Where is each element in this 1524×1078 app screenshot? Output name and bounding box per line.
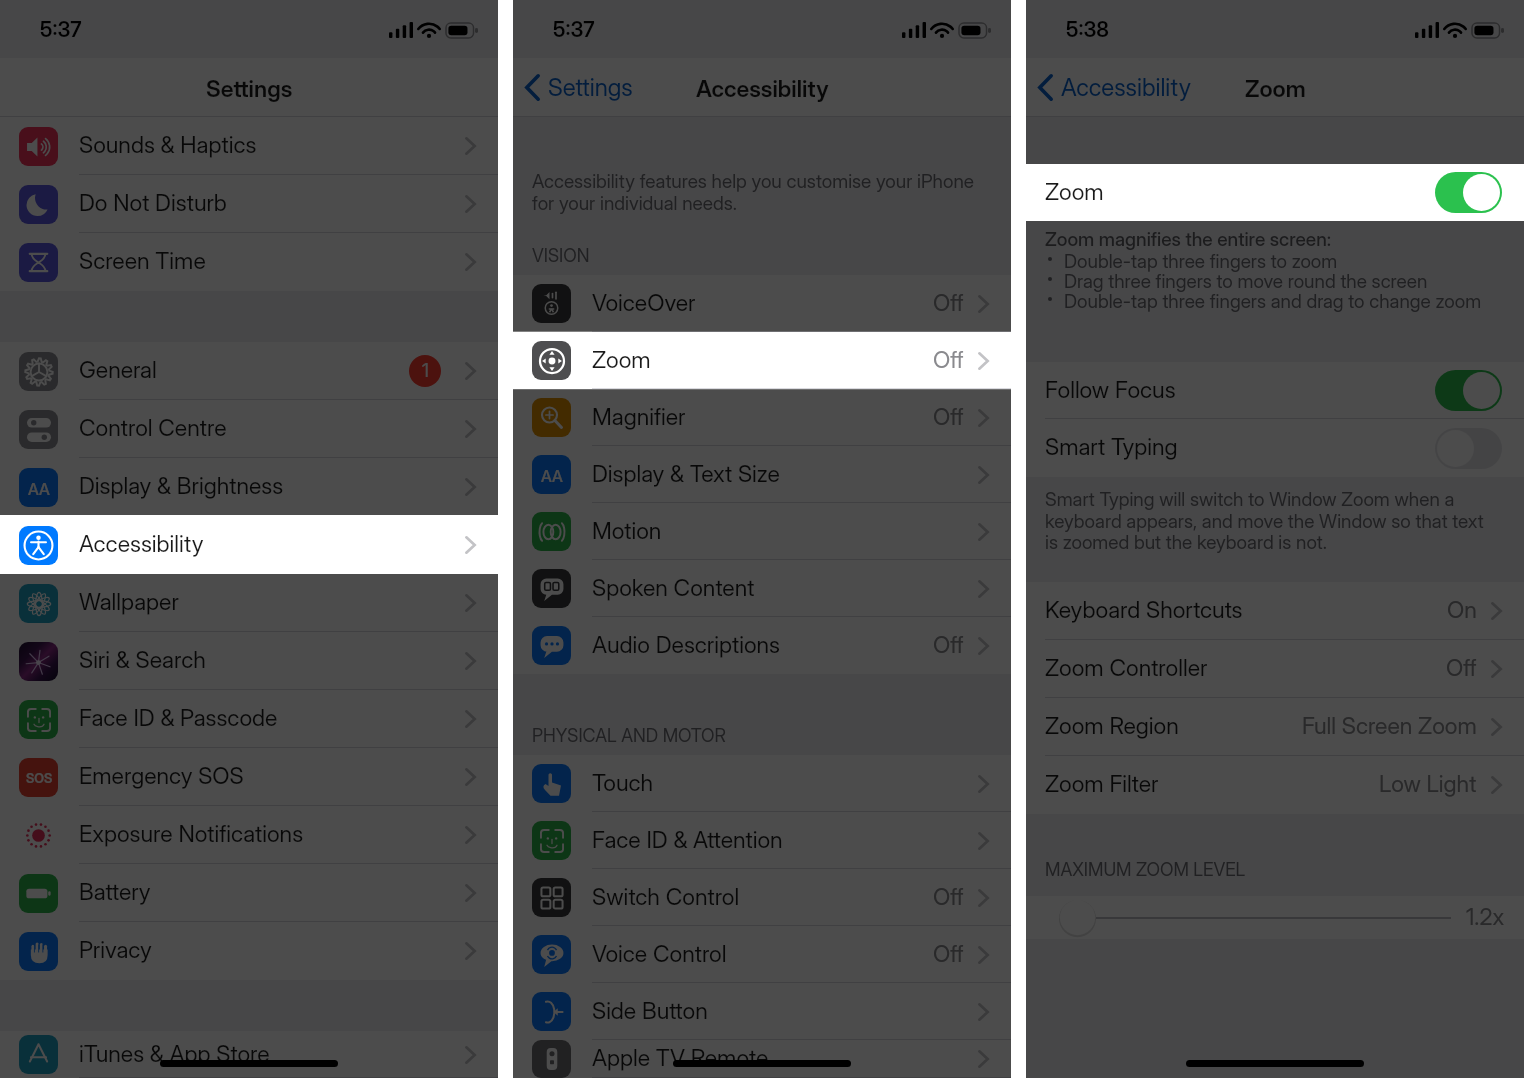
button[interactable]: Smart Typing [1026, 419, 1524, 477]
button[interactable]: Zoom [1026, 164, 1524, 221]
staticText: Face ID & Passcode [79, 704, 278, 732]
staticText: Off [933, 940, 964, 968]
staticText: 5:38 [1066, 17, 1109, 42]
staticText: Privacy [79, 936, 152, 964]
staticText: iTunes & App Store [79, 1040, 270, 1068]
staticText: SOS [26, 770, 53, 786]
staticText: Audio Descriptions [592, 631, 781, 659]
button[interactable]: iTunes & App Store [0, 1031, 498, 1078]
staticText: General [79, 356, 157, 384]
staticText: Off [933, 346, 964, 374]
button[interactable]: VoiceOver [513, 275, 1011, 332]
button[interactable]: Sounds & Haptics [0, 117, 498, 175]
staticText: Keyboard Shortcuts [1045, 596, 1243, 624]
button[interactable]: Face ID & Attention [513, 812, 1011, 869]
button[interactable]: Exposure Notifications [0, 806, 498, 864]
staticText: Control Centre [79, 414, 227, 442]
staticText: 1.2x [1466, 903, 1505, 931]
button[interactable]: Accessibility [1038, 68, 1191, 106]
button[interactable]: Touch [513, 755, 1011, 812]
button[interactable]: Battery [0, 864, 498, 922]
staticText: Accessibility [696, 75, 829, 103]
button[interactable]: Toggle on [1435, 172, 1502, 213]
staticText: Accessibility [1061, 73, 1191, 102]
staticText: Smart Typing will switch to Window Zoom … [1045, 488, 1497, 553]
staticText: AA [28, 479, 50, 498]
staticText: Zoom [1245, 75, 1306, 103]
button[interactable]: Motion [513, 503, 1011, 560]
button[interactable]: Do Not Disturb [0, 175, 498, 233]
staticText: Zoom Filter [1045, 770, 1159, 798]
button[interactable]: Privacy [0, 922, 498, 980]
button[interactable]: Screen Time [0, 233, 498, 291]
staticText: VISION [532, 245, 590, 267]
button[interactable]: Zoom [513, 332, 1011, 389]
staticText: Off [933, 883, 964, 911]
staticText: MAXIMUM ZOOM LEVEL [1045, 859, 1246, 881]
staticText: Zoom Controller [1045, 654, 1208, 682]
staticText: Siri & Search [79, 646, 206, 674]
staticText: Double-tap three fingers and drag to cha… [1064, 290, 1482, 313]
staticText: Full Screen Zoom [1302, 712, 1477, 740]
staticText: Zoom [592, 346, 651, 374]
button[interactable]: Voice Control [513, 926, 1011, 983]
button[interactable]: AA [513, 446, 1011, 503]
button[interactable]: Side Button [513, 983, 1011, 1040]
staticText: Follow Focus [1045, 376, 1176, 404]
button[interactable]: Magnifier [513, 389, 1011, 446]
button[interactable]: Toggle on [1435, 370, 1502, 411]
staticText: Display & Text Size [592, 460, 780, 488]
button[interactable]: Follow Focus [1026, 362, 1524, 419]
staticText: Settings [206, 75, 293, 103]
staticText: Smart Typing [1045, 433, 1178, 461]
staticText: 1 [422, 359, 429, 382]
staticText: AA [541, 466, 563, 485]
staticText: Accessibility features help you customis… [532, 170, 976, 214]
staticText: Emergency SOS [79, 762, 244, 790]
button[interactable]: Keyboard Shortcuts [1026, 582, 1524, 640]
staticText: VoiceOver [592, 289, 696, 317]
staticText: Low Light [1379, 770, 1477, 798]
button[interactable]: Settings [525, 68, 633, 106]
staticText: Off [933, 289, 964, 317]
staticText: Drag three fingers to move round the scr… [1064, 270, 1428, 293]
staticText: Display & Brightness [79, 472, 284, 500]
button[interactable]: Spoken Content [513, 560, 1011, 617]
button[interactable]: Wallpaper [0, 574, 498, 632]
staticText: 5:37 [553, 17, 595, 42]
button[interactable]: AA [0, 458, 498, 516]
staticText: Switch Control [592, 883, 740, 911]
staticText: Off [1446, 654, 1477, 682]
button[interactable]: Audio Descriptions [513, 617, 1011, 674]
staticText: Motion [592, 517, 662, 545]
button[interactable]: Apple TV Remote [513, 1040, 1011, 1078]
staticText: Voice Control [592, 940, 727, 968]
staticText: 5:37 [40, 17, 82, 42]
button[interactable]: Control Centre [0, 400, 498, 458]
button[interactable]: Toggle off [1435, 428, 1502, 469]
staticText: Face ID & Attention [592, 826, 783, 854]
staticText: Battery [79, 878, 151, 906]
staticText: Spoken Content [592, 574, 755, 602]
staticText: Do Not Disturb [79, 189, 227, 217]
staticText: Touch [592, 769, 654, 797]
staticText: Sounds & Haptics [79, 131, 257, 159]
button[interactable]: Zoom Controller [1026, 640, 1524, 698]
button[interactable]: Switch Control [513, 869, 1011, 926]
staticText: Screen Time [79, 247, 206, 275]
button[interactable]: SOS [0, 748, 498, 806]
button[interactable]: Zoom Region [1026, 698, 1524, 756]
staticText: Side Button [592, 997, 708, 1025]
button[interactable]: Zoom Filter [1026, 756, 1524, 814]
button[interactable]: Accessibility [0, 516, 498, 574]
staticText: Double-tap three fingers to zoom [1064, 250, 1338, 273]
button[interactable]: Face ID & Passcode [0, 690, 498, 748]
button[interactable]: General [0, 342, 498, 400]
staticText: Magnifier [592, 403, 686, 431]
staticText: Zoom [1045, 178, 1104, 206]
staticText: Exposure Notifications [79, 820, 304, 848]
button[interactable]: Siri & Search [0, 632, 498, 690]
staticText: Settings [548, 73, 633, 102]
staticText: Accessibility [79, 530, 204, 558]
